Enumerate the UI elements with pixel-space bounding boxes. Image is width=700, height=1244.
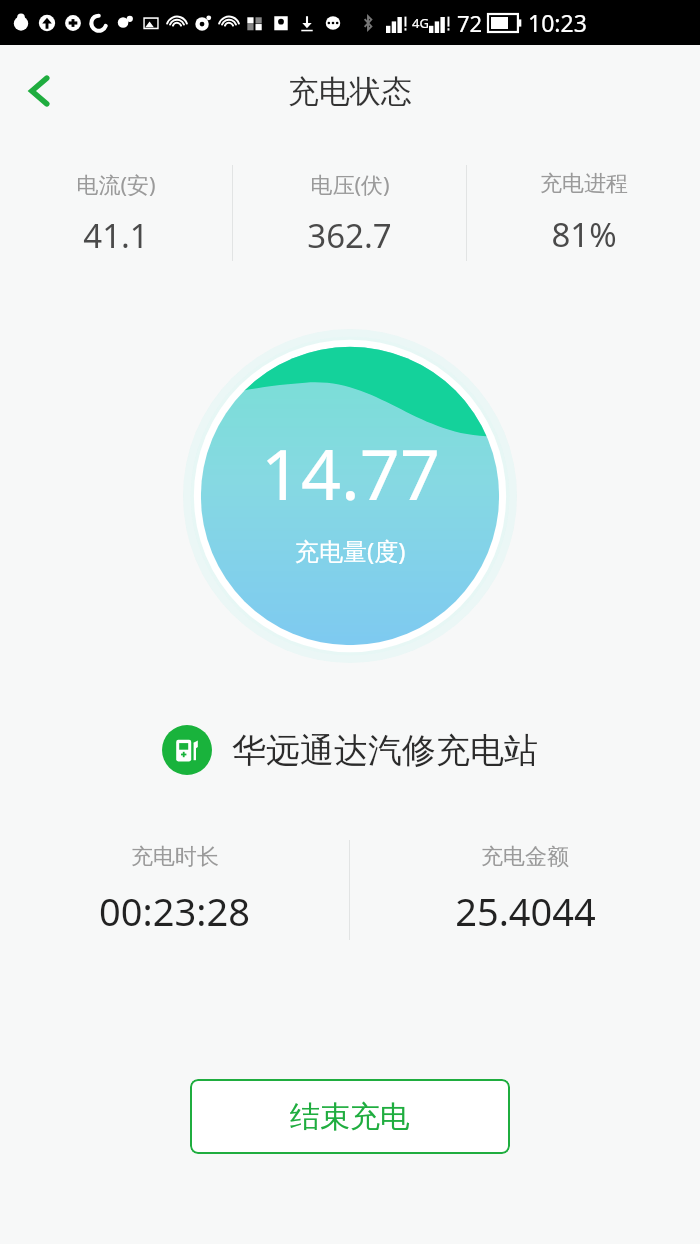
staticText: 充电进程 — [540, 170, 628, 198]
staticText: 充电量(度) — [295, 534, 406, 567]
staticText: 72 — [457, 8, 483, 38]
staticText: 362.7 — [307, 213, 392, 258]
other: Bluetooth — [356, 11, 380, 35]
staticText: 25.4044 — [455, 885, 596, 937]
staticText: 电流(安) — [76, 169, 156, 199]
button[interactable]: Back — [8, 59, 72, 123]
staticText: 81% — [551, 212, 617, 257]
button[interactable]: 结束充电 — [190, 1079, 510, 1154]
staticText: 10:23 — [528, 7, 587, 38]
staticText: 充电金额 — [481, 843, 569, 871]
button[interactable]: 华远通达汽修充电站 — [0, 725, 700, 775]
staticText: 充电时长 — [131, 843, 219, 871]
staticText: 华远通达汽修充电站 — [232, 729, 538, 772]
staticText: 41.1 — [83, 213, 149, 258]
staticText: 电压(伏) — [310, 169, 390, 199]
staticText: 4G — [412, 14, 429, 32]
staticText: 充电状态 — [288, 72, 412, 111]
staticText: 00:23:28 — [99, 885, 250, 937]
staticText: 14.77 — [261, 425, 440, 520]
staticText: 结束充电 — [290, 1098, 410, 1136]
